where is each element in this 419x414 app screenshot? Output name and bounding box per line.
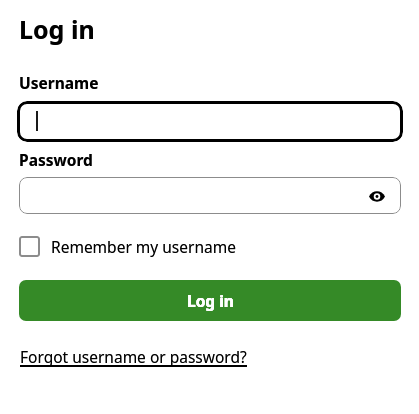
staticText: Log in <box>19 12 95 46</box>
staticText: Forgot username or password? <box>20 346 247 367</box>
staticText: Password <box>19 149 93 170</box>
staticText: Forgot username or password? <box>20 346 247 367</box>
button[interactable]: Remember my username <box>19 234 236 258</box>
button[interactable]: Password <box>19 177 401 214</box>
staticText: Password <box>19 149 93 170</box>
button[interactable]: Show password <box>365 184 389 208</box>
button[interactable]: Username <box>17 101 403 142</box>
staticText: Username <box>19 72 99 93</box>
staticText: Log in <box>19 12 95 46</box>
staticText: Remember my username <box>51 236 236 257</box>
staticText: Remember my username <box>51 236 236 257</box>
button[interactable]: Forgot username or password? <box>20 346 247 367</box>
staticText: Log in <box>187 290 234 311</box>
staticText: Username <box>19 72 99 93</box>
staticText: Log in <box>187 290 234 311</box>
button[interactable]: Log in <box>19 280 401 321</box>
